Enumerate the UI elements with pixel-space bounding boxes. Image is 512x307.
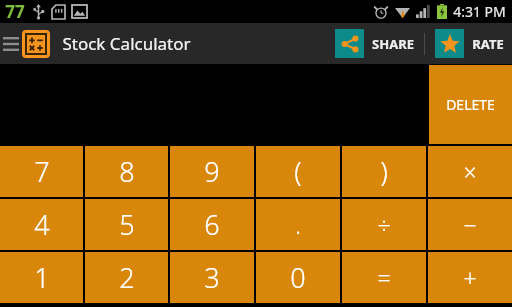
staticText: + <box>463 262 477 293</box>
staticText: 2 <box>119 259 135 296</box>
staticText: 9 <box>204 153 220 190</box>
staticText: DELETE <box>446 95 495 114</box>
button[interactable]: SHARE <box>335 23 414 64</box>
staticText: . <box>295 209 301 240</box>
button[interactable]: DELETE <box>429 65 512 144</box>
staticText: 8 <box>119 153 135 190</box>
staticText: 5 <box>119 206 135 243</box>
button[interactable]: 7 <box>0 146 83 197</box>
staticText: 6 <box>204 206 220 243</box>
button[interactable]: 5 <box>85 199 168 250</box>
staticText: ) <box>380 153 388 190</box>
button[interactable]: Menu <box>0 23 22 64</box>
button[interactable]: = <box>342 252 426 303</box>
staticText: 1 <box>34 259 50 296</box>
button[interactable]: ( <box>256 146 340 197</box>
staticText: RATE <box>472 35 504 53</box>
staticText: 4:31 PM <box>453 2 506 21</box>
button[interactable]: 2 <box>85 252 168 303</box>
staticText: × <box>463 156 477 187</box>
button[interactable]: − <box>428 199 512 250</box>
button[interactable]: 4 <box>0 199 83 250</box>
button[interactable]: × <box>428 146 512 197</box>
button[interactable]: 6 <box>170 199 254 250</box>
button[interactable]: + <box>428 252 512 303</box>
staticText: 77 <box>5 0 25 23</box>
button[interactable]: 1 <box>0 252 83 303</box>
button[interactable]: App icon <box>22 30 50 58</box>
button[interactable]: RATE <box>435 23 504 64</box>
button[interactable]: 3 <box>170 252 254 303</box>
staticText: ( <box>294 153 302 190</box>
button[interactable]: ÷ <box>342 199 426 250</box>
button[interactable]: 8 <box>85 146 168 197</box>
staticText: SHARE <box>372 35 414 53</box>
staticText: 0 <box>290 259 306 296</box>
button[interactable]: 9 <box>170 146 254 197</box>
staticText: − <box>463 209 477 240</box>
button[interactable]: 0 <box>256 252 340 303</box>
button[interactable]: . <box>256 199 340 250</box>
staticText: 4 <box>34 206 50 243</box>
staticText: ÷ <box>377 209 391 240</box>
staticText: Stock Calculator <box>62 32 191 55</box>
staticText: 7 <box>34 153 50 190</box>
button[interactable]: ) <box>342 146 426 197</box>
staticText: = <box>377 262 391 293</box>
staticText: 3 <box>204 259 220 296</box>
